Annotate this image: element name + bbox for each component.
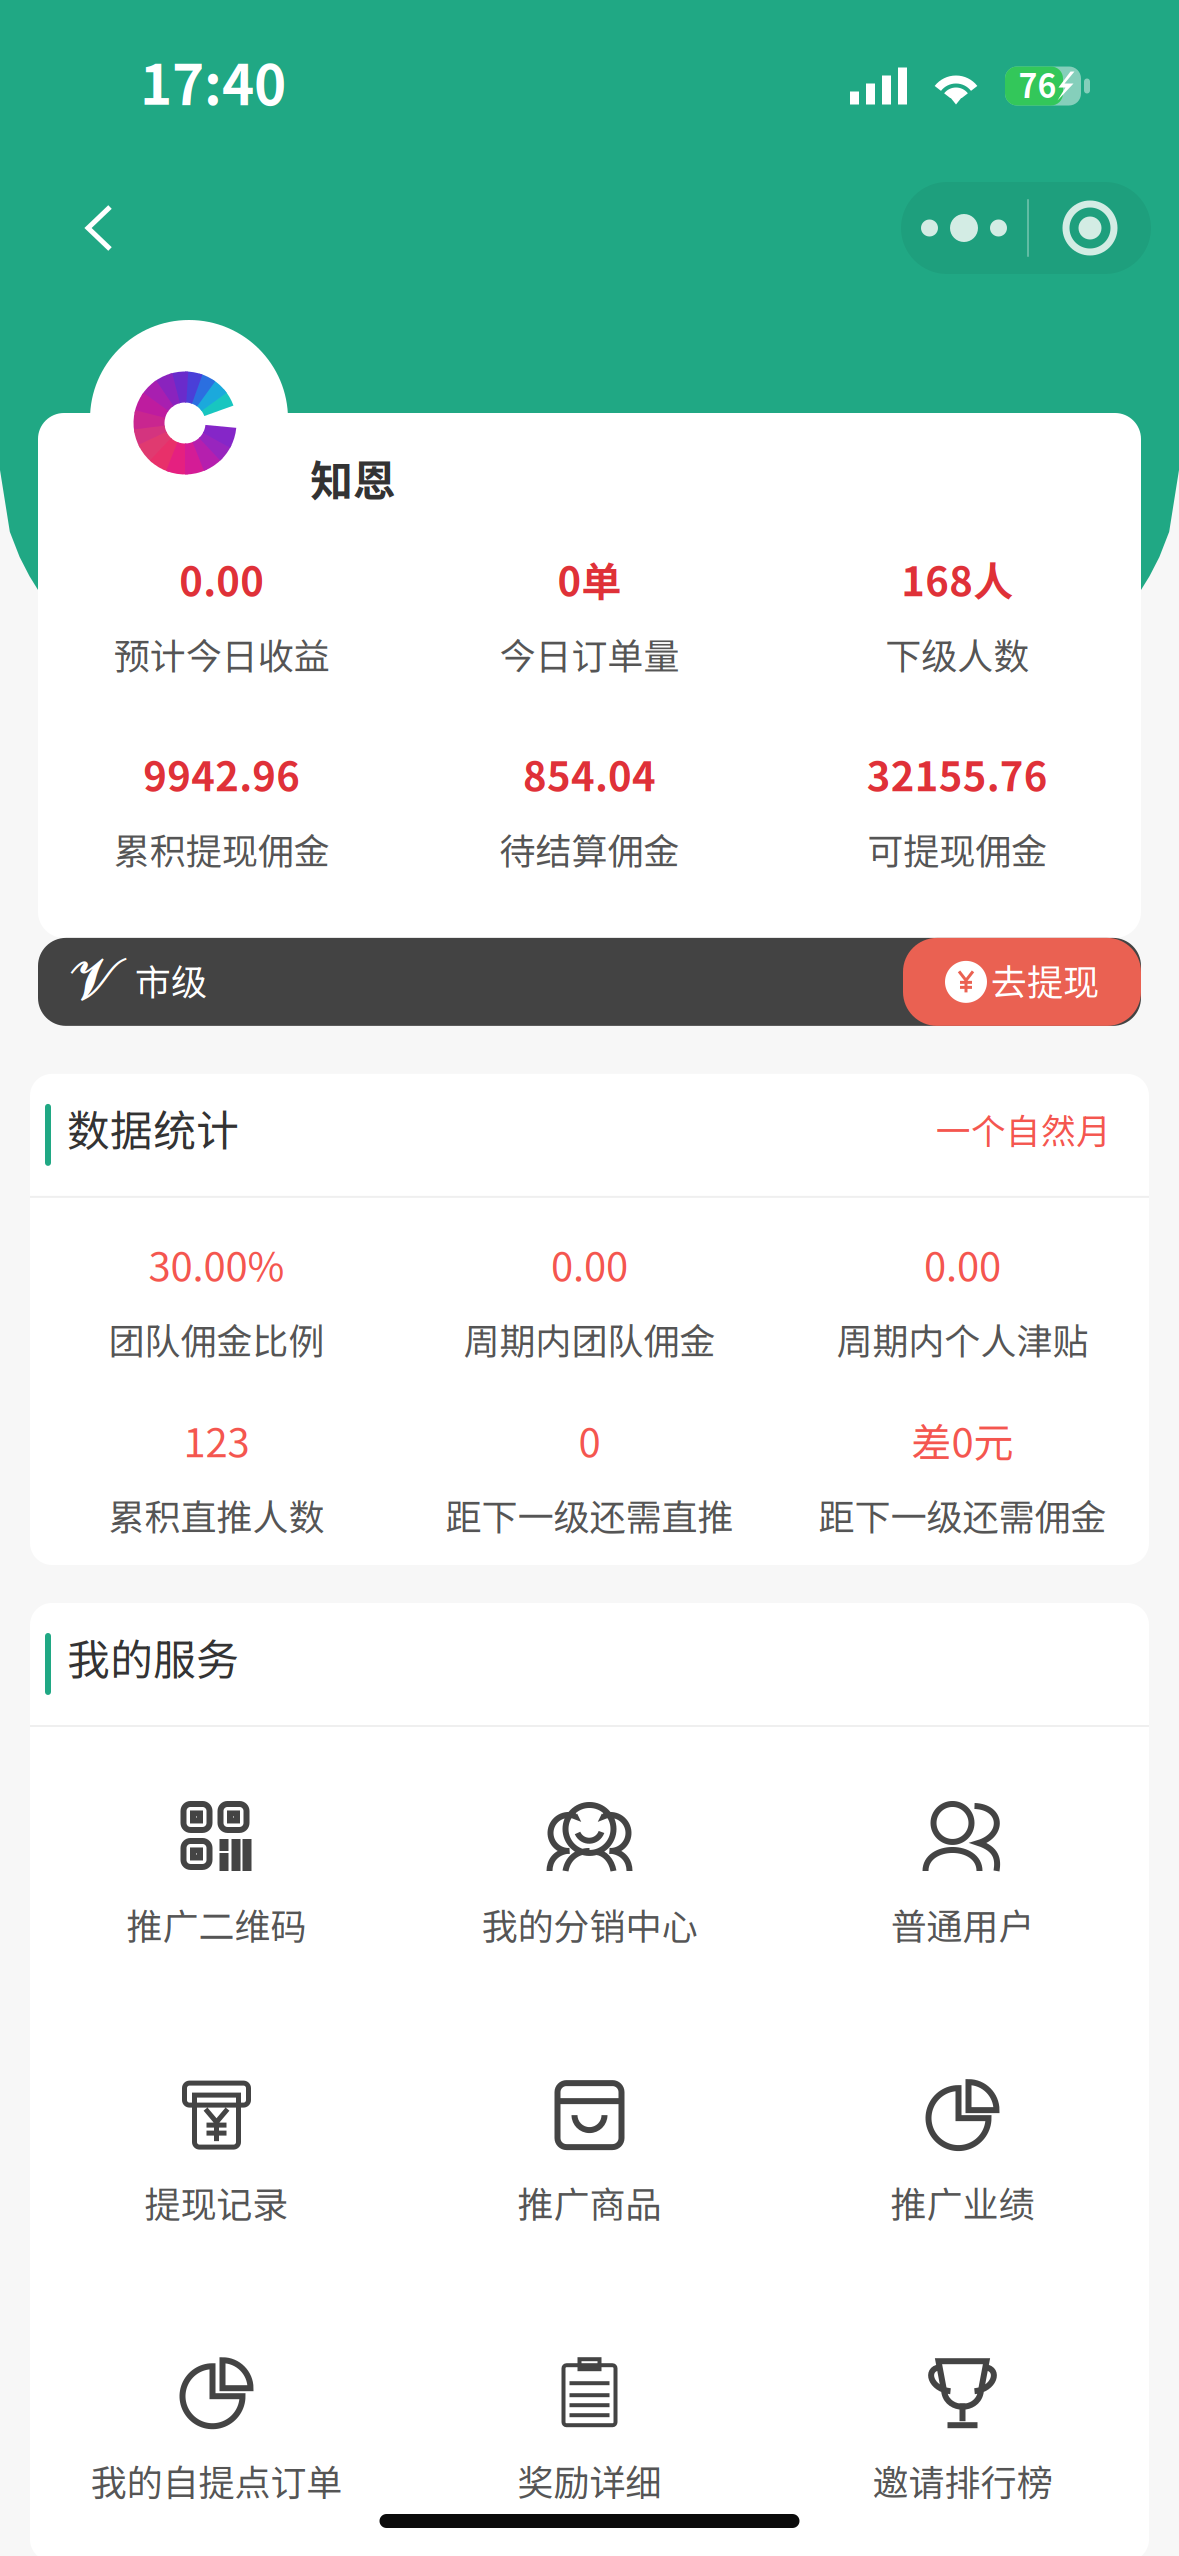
staticText: 可提现佣金 — [867, 823, 1047, 875]
button[interactable]: Close — [1029, 182, 1151, 274]
staticText: 一个自然月 — [936, 1104, 1111, 1154]
button[interactable]: More — [901, 182, 1027, 274]
button[interactable]: 推广二维码 — [30, 1727, 403, 2005]
staticText: 123 — [183, 1411, 249, 1469]
staticText: 提现记录 — [144, 2176, 288, 2228]
staticText: 距下一级还需直推 — [445, 1489, 733, 1541]
staticText: 差0元 — [911, 1411, 1013, 1469]
staticText: 周期内个人津贴 — [836, 1313, 1088, 1365]
button[interactable]: 我的自提点订单 — [30, 2283, 403, 2556]
staticText: 17:40 — [140, 41, 286, 121]
staticText: 0.00 — [924, 1235, 1001, 1293]
staticText: 数据统计 — [67, 1097, 239, 1159]
staticText: 今日订单量 — [499, 628, 679, 680]
staticText: 下级人数 — [885, 628, 1029, 680]
button[interactable]: 奖励详细 — [403, 2283, 776, 2556]
staticText: 0.00 — [179, 550, 264, 608]
staticText: 我的服务 — [67, 1626, 239, 1688]
button[interactable]: 提现记录 — [30, 2005, 403, 2283]
staticText: 32155.76 — [867, 745, 1048, 803]
staticText: 去提现 — [991, 954, 1099, 1006]
staticText: 普通用户 — [890, 1898, 1034, 1950]
staticText: 我的分销中心 — [481, 1898, 697, 1950]
staticText: 周期内团队佣金 — [463, 1313, 715, 1365]
button[interactable]: 去提现 — [903, 938, 1141, 1026]
staticText: 0单 — [557, 550, 621, 608]
staticText: 我的自提点订单 — [90, 2454, 342, 2506]
button[interactable]: 普通用户 — [776, 1727, 1149, 2005]
staticText: 知恩 — [310, 447, 396, 509]
staticText: 预计今日收益 — [114, 628, 330, 680]
staticText: 累积直推人数 — [108, 1489, 324, 1541]
staticText: 76 — [1018, 61, 1056, 107]
staticText: 168人 — [901, 550, 1013, 608]
button[interactable]: 邀请排行榜 — [776, 2283, 1149, 2556]
staticText: 邀请排行榜 — [872, 2454, 1052, 2506]
staticText: 𝓥 — [70, 952, 119, 1011]
staticText: 推广商品 — [517, 2176, 661, 2228]
button[interactable]: Back — [0, 177, 156, 279]
staticText: 市级 — [135, 954, 207, 1006]
button[interactable]: 我的分销中心 — [403, 1727, 776, 2005]
staticText: 累积提现佣金 — [114, 823, 330, 875]
staticText: 30.00% — [148, 1235, 284, 1293]
button[interactable]: 推广业绩 — [776, 2005, 1149, 2283]
staticText: 推广业绩 — [890, 2176, 1034, 2228]
staticText: 推广二维码 — [126, 1898, 306, 1950]
staticText: 0.00 — [551, 1235, 628, 1293]
staticText: 0 — [578, 1411, 600, 1469]
button[interactable]: 推广商品 — [403, 2005, 776, 2283]
staticText: 团队佣金比例 — [108, 1313, 324, 1365]
staticText: 奖励详细 — [517, 2454, 661, 2506]
staticText: 854.04 — [523, 745, 656, 803]
staticText: 待结算佣金 — [499, 823, 679, 875]
staticText: 9942.96 — [143, 745, 300, 803]
staticText: 距下一级还需佣金 — [818, 1489, 1106, 1541]
